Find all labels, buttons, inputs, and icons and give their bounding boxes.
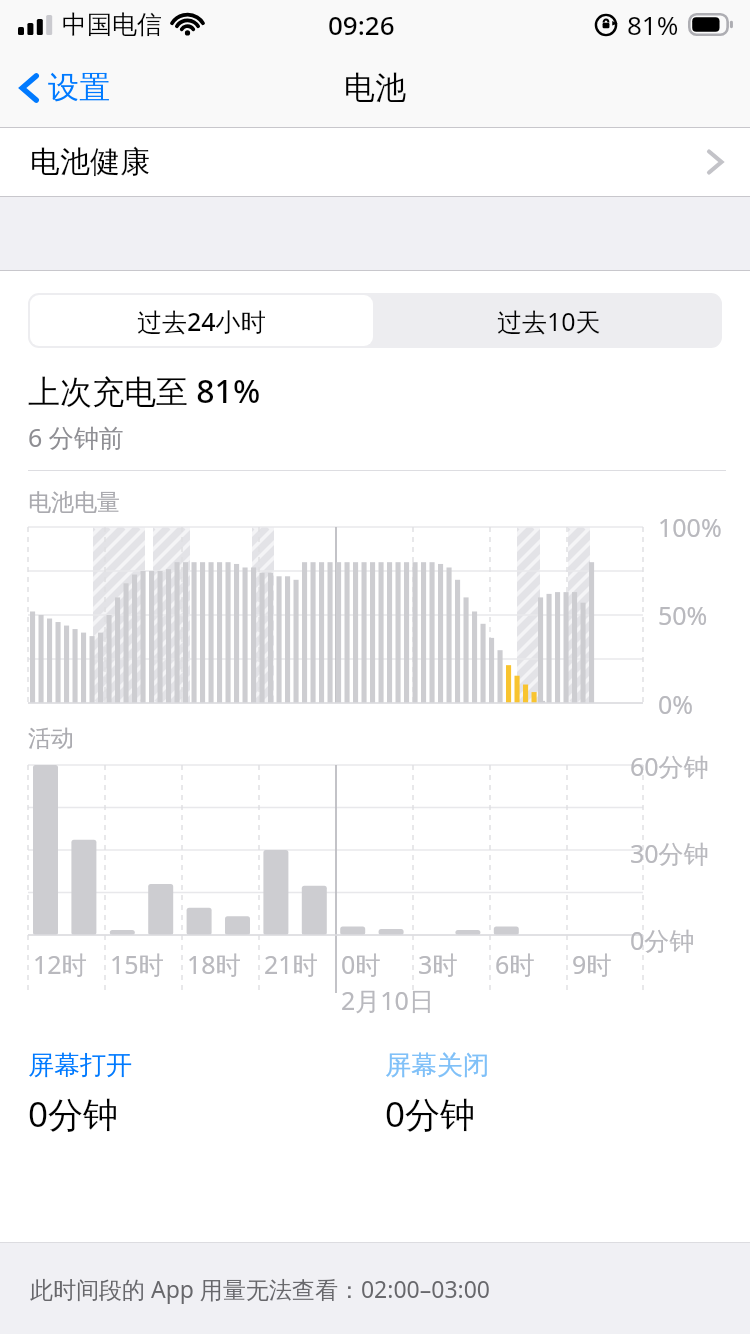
button[interactable]: 过去24小时 — [30, 295, 373, 346]
staticText: 60分钟 — [630, 749, 709, 783]
staticText: 9时 — [572, 947, 612, 981]
staticText: 此时间段的 App 用量无法查看：02:00–03:00 — [30, 1273, 491, 1304]
staticText: 屏幕打开 — [28, 1049, 132, 1082]
staticText: 3时 — [418, 947, 458, 981]
staticText: 6 分钟前 — [28, 420, 124, 454]
staticText: 50% — [658, 598, 708, 632]
staticText: 0分钟 — [28, 1090, 119, 1138]
staticText: 18时 — [187, 947, 241, 981]
staticText: 活动 — [28, 724, 74, 753]
button[interactable]: 过去10天 — [375, 293, 722, 348]
staticText: 过去10天 — [497, 304, 601, 338]
staticText: 0分钟 — [385, 1090, 476, 1138]
staticText: 电池 — [344, 68, 406, 107]
staticText: 过去24小时 — [137, 304, 266, 338]
button[interactable]: 设置 — [12, 60, 114, 115]
staticText: 21时 — [264, 947, 318, 981]
staticText: 0时 — [341, 947, 381, 981]
staticText: 电池电量 — [28, 488, 120, 517]
staticText: 100% — [658, 510, 722, 544]
staticText: 上次充电至 81% — [28, 369, 261, 413]
staticText: 12时 — [33, 947, 87, 981]
staticText: 电池健康 — [30, 143, 150, 181]
staticText: 屏幕关闭 — [385, 1049, 489, 1082]
staticText: 15时 — [110, 947, 164, 981]
button[interactable]: 电池健康 — [0, 128, 750, 196]
staticText: 设置 — [48, 68, 110, 107]
staticText: 30分钟 — [630, 836, 709, 870]
staticText: 2月10日 — [341, 983, 434, 1017]
staticText: 中国电信 — [62, 9, 162, 40]
staticText: 09:26 — [328, 7, 395, 42]
staticText: 6时 — [495, 947, 535, 981]
staticText: 0分钟 — [630, 923, 695, 957]
staticText: 81% — [627, 7, 679, 42]
staticText: 0% — [658, 687, 694, 721]
